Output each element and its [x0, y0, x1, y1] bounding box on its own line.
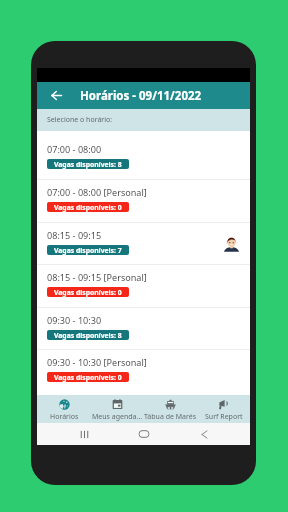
staticText: 07:00 - 08:00 [Personal]	[47, 186, 147, 198]
staticText: Vagas disponíveis: 0	[54, 203, 122, 212]
staticText: Selecione o horário:	[47, 115, 113, 125]
button[interactable]: 07:00 - 08:00	[37, 131, 250, 180]
button[interactable]: Recent apps	[74, 424, 94, 444]
staticText: Vagas disponíveis: 8	[54, 160, 122, 169]
staticText: Horários	[50, 412, 79, 422]
staticText: 09:30 - 10:30 [Personal]	[47, 356, 147, 368]
button[interactable]: Horários	[37, 395, 91, 423]
staticText: Vagas disponíveis: 0	[54, 288, 122, 297]
button[interactable]: 09:30 - 10:30	[37, 308, 250, 350]
staticText: 09:30 - 10:30	[47, 314, 102, 326]
button[interactable]: Tábua de Marés	[144, 395, 197, 423]
staticText: Vagas disponíveis: 7	[54, 246, 122, 255]
button[interactable]: Meus agenda...	[91, 395, 144, 423]
button[interactable]: 08:15 - 09:15 [Personal]	[37, 265, 250, 308]
staticText: Surf Report	[205, 412, 243, 422]
button[interactable]: 07:00 - 08:00 [Personal]	[37, 180, 250, 223]
staticText: Meus agenda...	[92, 412, 143, 422]
button[interactable]: 08:15 - 09:15	[37, 223, 250, 265]
button[interactable]: 09:30 - 10:30 [Personal]	[37, 350, 250, 395]
staticText: Tábua de Marés	[144, 412, 197, 422]
staticText: 08:15 - 09:15	[47, 229, 102, 241]
staticText: Vagas disponíveis: 0	[54, 373, 122, 382]
staticText: 08:15 - 09:15 [Personal]	[47, 271, 147, 283]
button[interactable]: Home	[134, 424, 154, 444]
staticText: Vagas disponíveis: 8	[54, 331, 122, 340]
staticText: Horários - 09/11/2022	[80, 88, 202, 104]
button[interactable]: Surf Report	[197, 395, 250, 423]
button[interactable]: Back	[42, 82, 71, 109]
staticText: 07:00 - 08:00	[47, 143, 102, 155]
button[interactable]: Back	[194, 424, 214, 444]
